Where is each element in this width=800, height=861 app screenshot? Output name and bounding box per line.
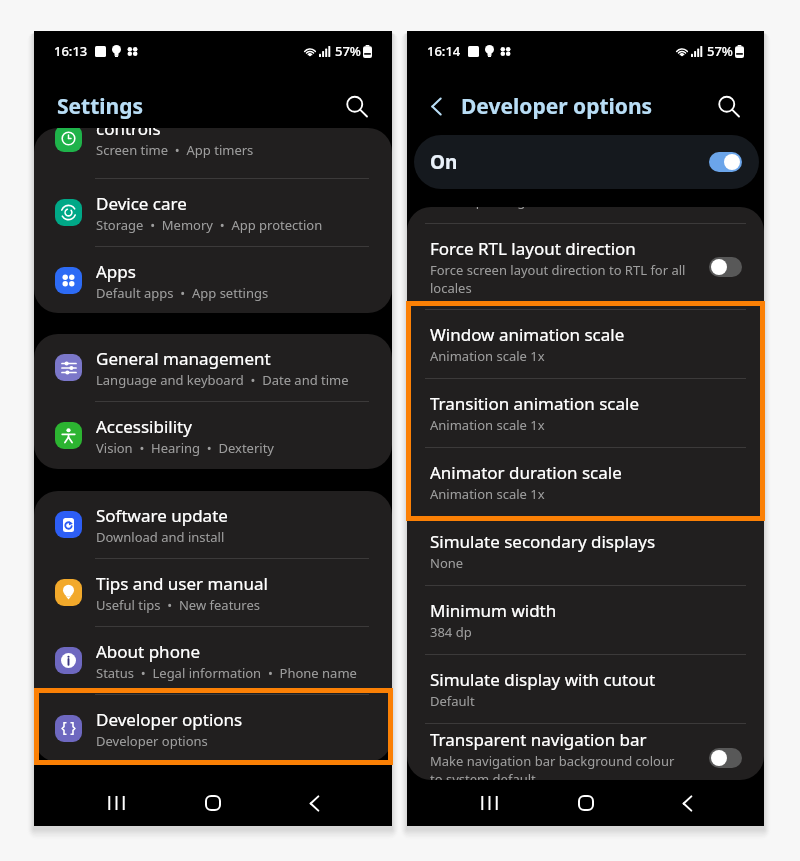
button[interactable]: Toggle off — [709, 748, 742, 768]
staticText: 57% — [707, 42, 733, 60]
staticText: Device care — [96, 192, 187, 215]
staticText: Screen time • App timers — [96, 141, 254, 159]
staticText: Animation scale 1x — [430, 347, 545, 365]
staticText: Transparent navigation bar — [430, 728, 647, 751]
button[interactable]: Developer options — [34, 695, 392, 762]
staticText: About phone — [96, 640, 201, 663]
staticText: Useful tips • New features — [96, 596, 261, 614]
button[interactable]: Tips and user manual — [34, 559, 392, 626]
button[interactable]: Back — [663, 780, 711, 826]
button[interactable]: Home — [562, 780, 610, 826]
staticText: Default apps • App settings — [96, 284, 269, 302]
button[interactable]: Toggle off — [709, 257, 742, 277]
staticText: Default — [430, 692, 475, 710]
staticText: Animation scale 1x — [430, 485, 545, 503]
button[interactable]: Device care — [34, 179, 392, 246]
button[interactable]: Force RTL layout direction — [407, 224, 764, 309]
button[interactable]: Search — [340, 90, 372, 122]
button[interactable]: Software update — [34, 491, 392, 558]
staticText: Transition animation scale — [430, 392, 639, 415]
staticText: Some options go here — [430, 207, 565, 210]
staticText: None — [430, 554, 464, 572]
button[interactable]: Back — [420, 90, 452, 122]
staticText: Software update — [96, 504, 228, 527]
button[interactable]: Simulate secondary displays — [407, 517, 764, 585]
button[interactable]: Search — [712, 90, 744, 122]
button[interactable]: Recents — [92, 780, 140, 826]
button[interactable]: Animator duration scale — [407, 448, 764, 516]
staticText: Developer options — [96, 732, 208, 750]
button[interactable]: controls — [34, 128, 392, 178]
button[interactable]: Minimum width — [407, 586, 764, 654]
staticText: Apps — [96, 260, 136, 283]
staticText: General management — [96, 347, 271, 370]
button[interactable]: Home — [189, 780, 237, 826]
button[interactable]: Toggle on — [709, 152, 742, 172]
staticText: Tips and user manual — [96, 572, 268, 595]
staticText: 384 dp — [430, 623, 472, 641]
button[interactable]: Transparent navigation bar — [407, 724, 764, 780]
staticText: Simulate display with cutout — [430, 668, 656, 691]
staticText: Force screen layout direction to RTL for… — [430, 261, 686, 297]
staticText: Make navigation bar background colour to… — [430, 752, 675, 780]
button[interactable]: Simulate display with cutout — [407, 655, 764, 723]
staticText: Language and keyboard • Date and time — [96, 371, 349, 389]
staticText: Simulate secondary displays — [430, 530, 656, 553]
staticText: Settings — [57, 92, 144, 121]
button[interactable]: Developer options — [407, 207, 764, 223]
staticText: Download and install — [96, 528, 225, 546]
button[interactable]: On — [414, 135, 759, 189]
button[interactable]: Transition animation scale — [407, 379, 764, 447]
staticText: Animator duration scale — [430, 461, 622, 484]
staticText: On — [430, 149, 458, 175]
button[interactable]: Back — [290, 780, 338, 826]
staticText: Developer options — [461, 92, 653, 121]
button[interactable]: Accessibility — [34, 402, 392, 469]
staticText: Status • Legal information • Phone name — [96, 664, 357, 682]
staticText: Window animation scale — [430, 323, 625, 346]
staticText: 16:14 — [427, 42, 461, 60]
button[interactable]: About phone — [34, 627, 392, 694]
staticText: Accessibility — [96, 415, 192, 438]
staticText: Storage • Memory • App protection — [96, 216, 323, 234]
button[interactable]: Window animation scale — [407, 310, 764, 378]
staticText: 16:13 — [54, 42, 88, 60]
button[interactable]: Apps — [34, 247, 392, 313]
staticText: 57% — [335, 42, 361, 60]
button[interactable]: Recents — [465, 780, 513, 826]
staticText: Developer options — [96, 708, 243, 731]
staticText: Animation scale 1x — [430, 416, 545, 434]
staticText: Minimum width — [430, 599, 557, 622]
staticText: controls — [96, 128, 161, 140]
button[interactable]: General management — [34, 334, 392, 401]
staticText: Force RTL layout direction — [430, 237, 636, 260]
staticText: Vision • Hearing • Dexterity — [96, 439, 274, 457]
